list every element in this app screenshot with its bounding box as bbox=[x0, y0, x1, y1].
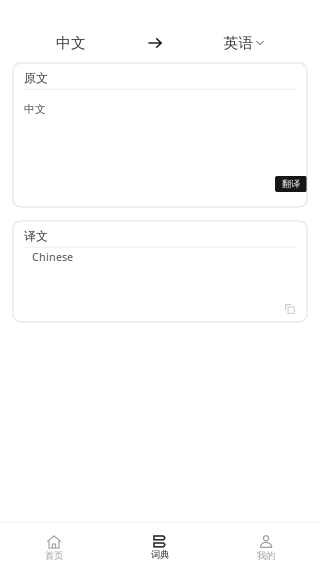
staticText: 译文 bbox=[24, 229, 48, 244]
staticText: 词典 bbox=[151, 549, 169, 560]
staticText: 首页 bbox=[45, 550, 63, 561]
staticText: 中文 bbox=[24, 103, 46, 116]
staticText: 原文 bbox=[24, 71, 48, 86]
button[interactable]: Swap languages bbox=[101, 30, 209, 56]
button[interactable]: 首页 bbox=[1, 522, 107, 566]
button[interactable]: 翻译 bbox=[275, 176, 307, 192]
staticText: Chinese bbox=[32, 250, 73, 264]
button[interactable]: 我的 bbox=[213, 522, 319, 566]
staticText: 我的 bbox=[257, 550, 275, 561]
staticText: 翻译 bbox=[282, 178, 300, 190]
staticText: 英语 bbox=[223, 34, 253, 52]
staticText: 中文 bbox=[56, 34, 86, 52]
button[interactable]: Copy translation bbox=[285, 304, 307, 322]
button[interactable]: 词典 bbox=[107, 522, 213, 566]
button[interactable]: 英语 bbox=[209, 30, 279, 56]
button[interactable]: 中文 bbox=[41, 30, 101, 56]
